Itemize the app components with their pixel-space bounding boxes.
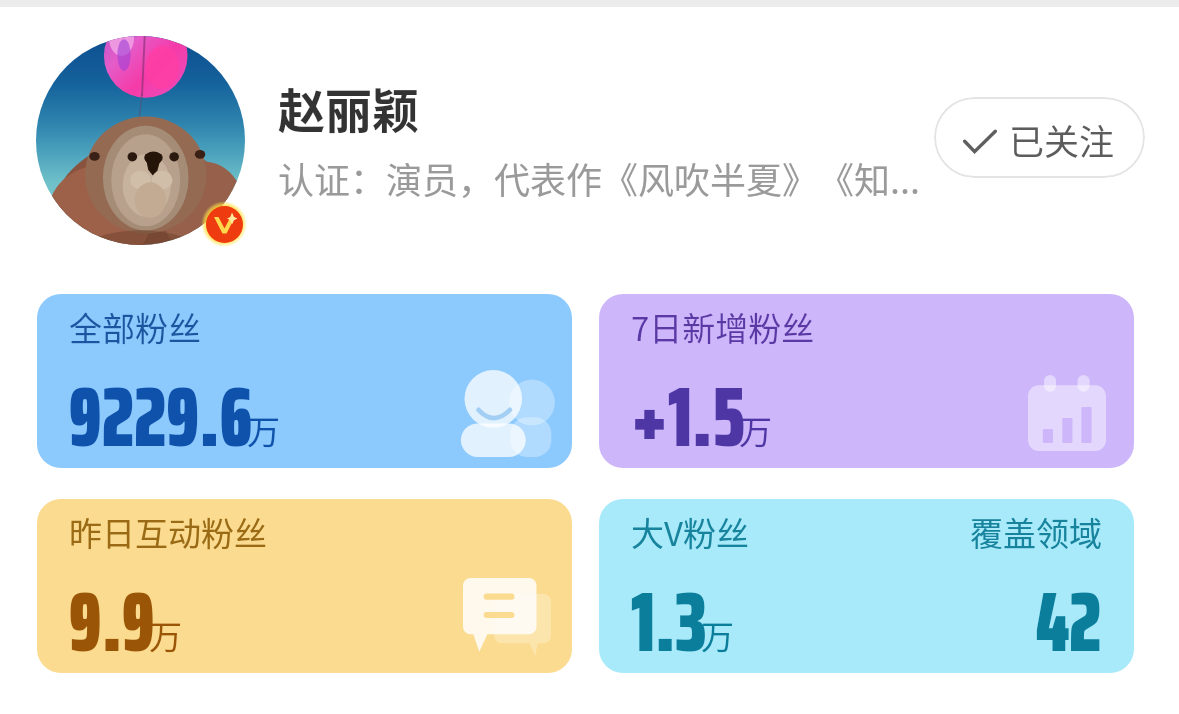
staticText: 1.3 — [631, 556, 707, 673]
staticText: 7日新增粉丝 — [631, 303, 815, 351]
button[interactable]: 昨日互动粉丝 — [37, 499, 572, 673]
staticText: 认证：演员，代表作《风吹半夏》《知... — [278, 152, 921, 204]
staticText: 42 — [1036, 556, 1102, 673]
staticText: 9.9 — [69, 556, 155, 673]
staticText: 万 — [739, 406, 772, 454]
button[interactable]: 大V粉丝 — [599, 499, 1134, 673]
staticText: 已关注 — [1009, 114, 1115, 165]
button[interactable]: Profile avatar — [36, 36, 245, 245]
button[interactable]: 已关注 — [934, 97, 1145, 178]
staticText: 万 — [247, 406, 280, 454]
staticText: 万 — [701, 611, 734, 659]
staticText: 大V粉丝 — [631, 508, 749, 556]
staticText: +1.5 — [631, 351, 745, 468]
button[interactable]: 7日新增粉丝 — [599, 294, 1134, 468]
staticText: 赵丽颖 — [278, 73, 419, 141]
staticText: 9229.6 — [69, 351, 253, 468]
staticText: 昨日互动粉丝 — [69, 508, 267, 556]
staticText: 覆盖领域 — [970, 508, 1102, 556]
button[interactable]: 全部粉丝 — [37, 294, 572, 468]
staticText: 万 — [149, 611, 182, 659]
staticText: 全部粉丝 — [69, 303, 201, 351]
